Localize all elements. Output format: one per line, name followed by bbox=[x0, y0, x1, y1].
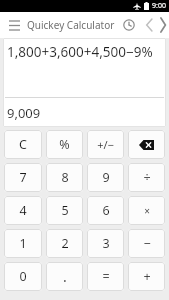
button[interactable]: 1 bbox=[4, 229, 42, 258]
staticText: − bbox=[143, 235, 151, 252]
staticText: % bbox=[59, 136, 70, 153]
button[interactable]: 9 bbox=[87, 163, 124, 192]
staticText: ÷ bbox=[143, 169, 151, 186]
staticText: 4 bbox=[19, 202, 27, 219]
button[interactable]: Next bbox=[160, 14, 166, 36]
button[interactable]: 3 bbox=[87, 229, 124, 258]
button[interactable]: 6 bbox=[87, 196, 124, 225]
staticText: . bbox=[63, 267, 67, 286]
button[interactable]: 7 bbox=[4, 163, 42, 192]
staticText: + bbox=[143, 268, 151, 285]
button[interactable]: . bbox=[46, 262, 83, 291]
staticText: 9,009 bbox=[7, 104, 41, 122]
button[interactable]: C bbox=[4, 130, 42, 159]
button[interactable]: 0 bbox=[4, 262, 42, 291]
button[interactable]: × bbox=[128, 196, 165, 225]
staticText: 9 bbox=[102, 169, 110, 186]
staticText: = bbox=[102, 268, 110, 285]
button[interactable]: 5 bbox=[46, 196, 83, 225]
button[interactable]: % bbox=[46, 130, 83, 159]
staticText: 0 bbox=[19, 268, 27, 285]
button[interactable]: Previous bbox=[138, 14, 160, 36]
staticText: × bbox=[144, 204, 150, 218]
button[interactable]: Backspace bbox=[128, 130, 165, 159]
staticText: 7 bbox=[19, 169, 27, 186]
staticText: +/− bbox=[97, 137, 114, 152]
button[interactable]: History bbox=[120, 16, 138, 34]
staticText: 1 bbox=[19, 235, 27, 252]
button[interactable]: 8 bbox=[46, 163, 83, 192]
staticText: Quickey Calculator bbox=[27, 18, 115, 32]
button[interactable]: Menu bbox=[5, 16, 23, 34]
button[interactable]: ÷ bbox=[128, 163, 165, 192]
staticText: 8 bbox=[61, 169, 69, 186]
staticText: 5 bbox=[61, 202, 69, 219]
staticText: 6 bbox=[102, 202, 110, 219]
button[interactable]: − bbox=[128, 229, 165, 258]
staticText: C bbox=[19, 136, 27, 153]
button[interactable]: +/− bbox=[87, 130, 124, 159]
staticText: 9:00 bbox=[152, 1, 166, 11]
button[interactable]: = bbox=[87, 262, 124, 291]
button[interactable]: 4 bbox=[4, 196, 42, 225]
staticText: 3 bbox=[102, 235, 110, 252]
button[interactable]: + bbox=[128, 262, 165, 291]
staticText: 1,800+3,600+4,500−9% bbox=[7, 43, 153, 61]
button[interactable]: 2 bbox=[46, 229, 83, 258]
staticText: 2 bbox=[61, 235, 69, 252]
